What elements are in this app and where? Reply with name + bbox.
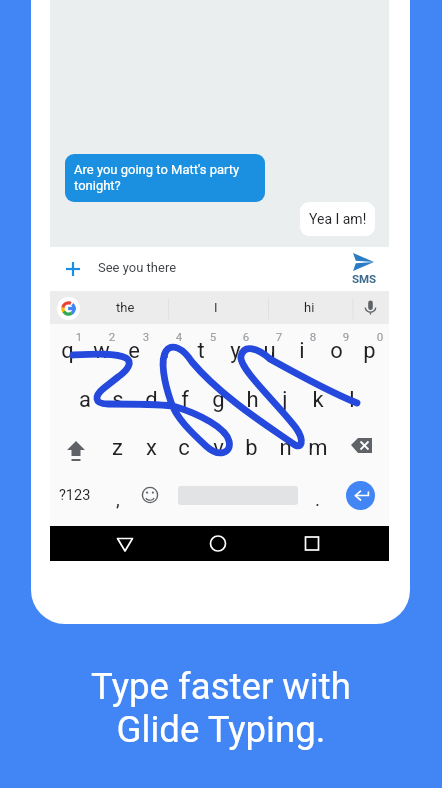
button[interactable]: z	[100, 426, 134, 470]
button[interactable]: u	[252, 329, 286, 373]
button[interactable]: Send SMS	[348, 249, 378, 289]
button[interactable]: y	[218, 329, 252, 373]
button[interactable]: Home	[200, 526, 236, 561]
button[interactable]: g	[201, 378, 235, 422]
staticText: 9	[331, 330, 361, 343]
staticText: the	[116, 300, 135, 315]
staticText: c	[178, 435, 190, 461]
button[interactable]: f	[168, 378, 202, 422]
button[interactable]: Yea I am!	[300, 202, 375, 236]
staticText: 6	[231, 330, 261, 343]
staticText: j	[282, 387, 288, 413]
staticText: f	[181, 387, 189, 413]
button[interactable]: i	[285, 329, 319, 373]
staticText: m	[308, 435, 328, 461]
button[interactable]: Back	[107, 526, 143, 561]
staticText: 8	[298, 330, 328, 343]
button[interactable]: q	[50, 329, 84, 373]
staticText: ?123	[59, 487, 91, 504]
staticText: n	[279, 435, 292, 461]
button[interactable]: e	[117, 329, 151, 373]
staticText: SMS	[349, 272, 379, 285]
staticText: 3	[131, 330, 161, 343]
staticText: g	[212, 387, 225, 413]
staticText: o	[330, 338, 343, 364]
staticText: y	[230, 338, 241, 364]
staticText: 0	[365, 330, 395, 343]
button[interactable]: b	[234, 426, 268, 470]
button[interactable]: Are you going to Matt's party tonight?	[65, 154, 265, 202]
button[interactable]: Voice input	[361, 298, 380, 317]
staticText: s	[112, 387, 124, 413]
staticText: Type faster with Glide Typing.	[0, 665, 442, 751]
staticText: 4	[164, 330, 194, 343]
button[interactable]: w	[84, 329, 118, 373]
button[interactable]: j	[268, 378, 302, 422]
button[interactable]: a	[68, 378, 102, 422]
staticText: p	[363, 338, 376, 364]
staticText: Yea I am!	[309, 211, 367, 227]
staticText: a	[79, 387, 91, 413]
button[interactable]: v	[201, 426, 235, 470]
staticText: See you there	[98, 260, 177, 275]
button[interactable]: Backspace	[346, 430, 380, 464]
staticText: 1	[64, 330, 94, 343]
button[interactable]: .	[302, 477, 334, 513]
button[interactable]: o	[319, 329, 353, 373]
staticText: 2	[97, 330, 127, 343]
button[interactable]: c	[167, 426, 201, 470]
button[interactable]: s	[101, 378, 135, 422]
button[interactable]: Shift	[59, 430, 93, 464]
button[interactable]: hi	[267, 291, 351, 324]
staticText: k	[312, 387, 324, 413]
button[interactable]: I	[174, 291, 258, 324]
button[interactable]: p	[352, 329, 386, 373]
button[interactable]: x	[134, 426, 168, 470]
button[interactable]: r	[151, 329, 185, 373]
button[interactable]: m	[301, 426, 335, 470]
staticText: x	[146, 435, 157, 461]
button[interactable]: l	[335, 378, 369, 422]
button[interactable]: d	[134, 378, 168, 422]
button[interactable]: h	[235, 378, 269, 422]
button[interactable]: Enter	[346, 481, 375, 510]
staticText: Are you going to Matt's party tonight?	[74, 162, 256, 193]
staticText: z	[112, 435, 123, 461]
button[interactable]: Emoji	[134, 477, 166, 513]
staticText: .	[315, 488, 321, 510]
button[interactable]: t	[184, 329, 218, 373]
staticText: q	[61, 338, 74, 364]
staticText: t	[197, 338, 205, 364]
button[interactable]: Google search	[57, 297, 80, 320]
staticText: d	[145, 387, 158, 413]
button[interactable]: Recent apps	[294, 526, 330, 561]
staticText: hi	[304, 300, 315, 315]
button[interactable]: k	[301, 378, 335, 422]
staticText: 5	[198, 330, 228, 343]
staticText: w	[93, 338, 110, 364]
staticText: l	[349, 387, 355, 413]
staticText: u	[263, 338, 276, 364]
staticText: ,	[116, 488, 120, 510]
staticText: I	[214, 300, 218, 315]
staticText: r	[164, 338, 172, 364]
staticText: v	[213, 435, 224, 461]
button[interactable]: ,	[102, 477, 134, 513]
staticText: 7	[264, 330, 294, 343]
button[interactable]: ?123	[55, 477, 95, 513]
staticText: e	[128, 338, 140, 364]
staticText: b	[245, 435, 258, 461]
staticText: i	[299, 338, 305, 364]
button[interactable]: the	[83, 291, 167, 324]
staticText: h	[246, 387, 259, 413]
button[interactable]: Add attachment	[61, 257, 85, 281]
button[interactable]: n	[268, 426, 302, 470]
